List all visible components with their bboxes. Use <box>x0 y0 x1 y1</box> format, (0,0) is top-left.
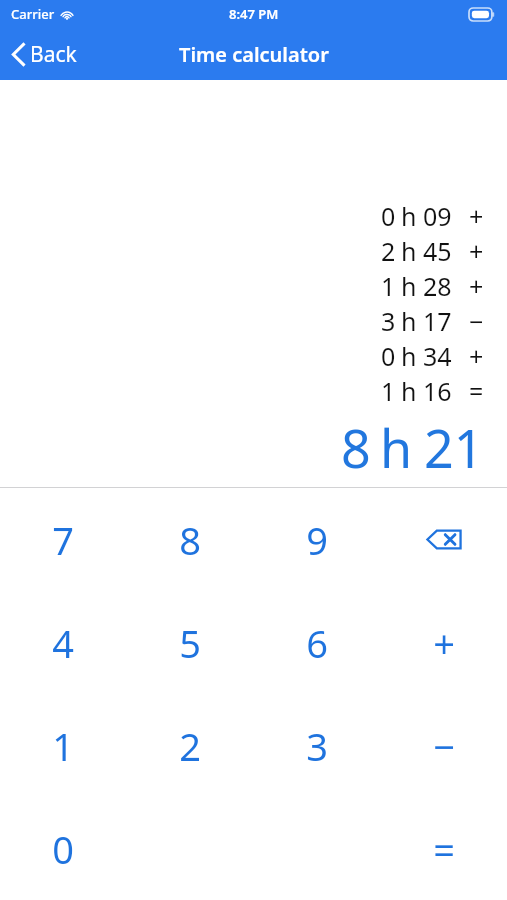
button[interactable]: 9 <box>253 488 380 591</box>
staticText: + <box>469 234 484 268</box>
button[interactable]: 8 <box>126 488 253 591</box>
button[interactable]: + <box>380 591 507 694</box>
staticText: 9 <box>306 514 328 566</box>
staticText: 3 <box>306 720 328 772</box>
staticText: = <box>433 823 455 875</box>
staticText: − <box>469 304 484 338</box>
button[interactable]: Back <box>0 32 91 77</box>
button[interactable]: Backspace <box>380 488 507 591</box>
staticText: 5 <box>179 617 201 669</box>
staticText: 0 <box>381 199 396 233</box>
button[interactable]: 1 <box>0 694 126 797</box>
staticText: Carrier <box>11 5 55 23</box>
staticText: 6 <box>306 617 328 669</box>
staticText: 8 <box>179 514 201 566</box>
staticText: 3 <box>381 304 396 338</box>
staticText: h <box>401 339 417 373</box>
staticText: 09 <box>423 199 452 233</box>
button[interactable]: 4 <box>0 591 126 694</box>
staticText: 16 <box>423 374 452 408</box>
staticText: 17 <box>423 304 452 338</box>
staticText: Back <box>30 40 77 69</box>
button[interactable]: 2 <box>126 694 253 797</box>
staticText: 0 <box>381 339 396 373</box>
staticText: + <box>433 617 455 669</box>
staticText: 8 <box>341 412 371 483</box>
button[interactable]: = <box>380 797 507 900</box>
staticText: 2 <box>179 720 201 772</box>
staticText: 28 <box>423 269 452 303</box>
staticText: h <box>401 269 417 303</box>
staticText: 45 <box>423 234 452 268</box>
staticText: h <box>401 304 417 338</box>
staticText: 1 <box>52 720 74 772</box>
staticText: 1 <box>381 374 396 408</box>
staticText: h <box>380 412 413 483</box>
button[interactable]: − <box>380 694 507 797</box>
staticText: − <box>433 720 455 772</box>
staticText: h <box>401 199 417 233</box>
button[interactable]: 3 <box>253 694 380 797</box>
button[interactable]: 5 <box>126 591 253 694</box>
button[interactable]: 7 <box>0 488 126 591</box>
staticText: 8:47 PM <box>229 5 279 23</box>
button[interactable]: 0 <box>0 797 126 900</box>
staticText: 7 <box>52 514 74 566</box>
staticText: 21 <box>424 412 484 483</box>
staticText: h <box>401 234 417 268</box>
staticText: = <box>469 374 484 408</box>
staticText: 0 <box>52 823 74 875</box>
button[interactable]: 6 <box>253 591 380 694</box>
staticText: h <box>401 374 417 408</box>
staticText: + <box>469 199 484 233</box>
staticText: 1 <box>381 269 396 303</box>
staticText: Time calculator <box>179 41 329 68</box>
staticText: 34 <box>423 339 452 373</box>
staticText: 2 <box>381 234 396 268</box>
staticText: + <box>469 269 484 303</box>
staticText: + <box>469 339 484 373</box>
staticText: 4 <box>52 617 74 669</box>
